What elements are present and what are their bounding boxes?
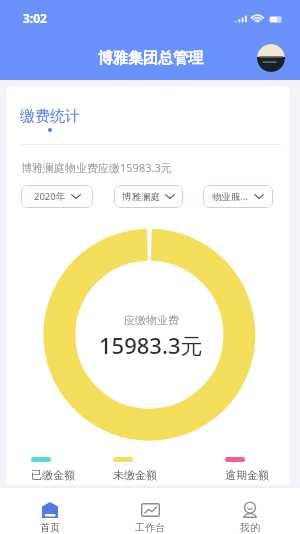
staticText: 首页 (40, 521, 60, 534)
staticText: 物业服... (212, 190, 249, 203)
button[interactable]: 工作台 (100, 487, 200, 534)
button[interactable]: 我的 (200, 487, 300, 534)
staticText: 博雅澜庭 (122, 191, 160, 203)
staticText: 缴费统计 (20, 107, 80, 126)
staticText: 我的 (240, 521, 260, 534)
staticText: 应缴物业费 (124, 313, 179, 327)
button[interactable]: 首页 (0, 487, 100, 534)
staticText: 已缴金额 (31, 468, 75, 482)
button[interactable]: 物业服... (203, 185, 273, 208)
staticText: 博雅集团总管理 (98, 49, 203, 68)
staticText: 博雅澜庭物业费应缴15983.3元 (21, 160, 172, 175)
staticText: 未缴金额 (113, 468, 157, 482)
button[interactable]: 博雅澜庭 (114, 185, 183, 208)
staticText: 工作台 (135, 521, 165, 534)
staticText: 3:02 (23, 10, 47, 26)
button[interactable]: 2020年 (21, 185, 93, 208)
staticText: 15983.3元 (99, 330, 203, 360)
staticText: 2020年 (34, 190, 66, 203)
button[interactable]: Profile (257, 44, 285, 72)
staticText: 逾期金额 (225, 468, 269, 482)
